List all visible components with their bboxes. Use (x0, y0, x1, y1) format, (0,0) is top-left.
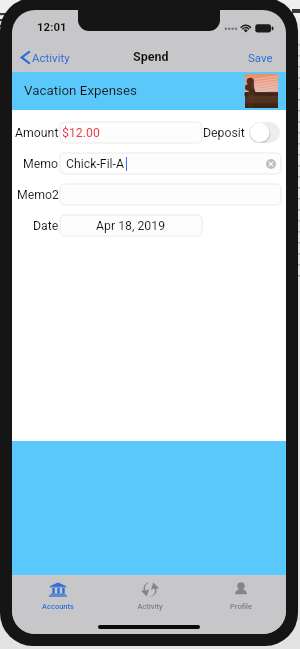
staticText: Memo2 (17, 188, 59, 202)
staticText: Activity (32, 51, 70, 64)
staticText: Activity (137, 602, 163, 611)
staticText: Profile (230, 602, 252, 611)
staticText: Apr 18, 2019 (96, 219, 166, 233)
staticText: Spend (133, 49, 169, 64)
staticText: Accounts (42, 602, 74, 611)
button[interactable]: Activity (104, 575, 195, 620)
button[interactable]: Save (248, 44, 273, 70)
staticText: Vacation Expenses (24, 83, 137, 99)
button[interactable]: Profile (195, 575, 286, 620)
button[interactable]: Deposit toggle (249, 122, 280, 143)
button[interactable]: Chick-Fil-A (60, 153, 281, 174)
button[interactable]: Accounts (12, 575, 104, 620)
button[interactable]: Clear text (266, 159, 276, 169)
staticText: Chick-Fil-A (66, 157, 125, 171)
staticText: 12:01 (37, 20, 67, 33)
button[interactable]: Deposit (203, 122, 280, 143)
staticText: Amount (15, 126, 59, 140)
button[interactable] (60, 184, 281, 205)
staticText: Save (248, 51, 273, 64)
staticText: Deposit (203, 126, 245, 140)
button[interactable]: Expense photo (245, 74, 278, 108)
staticText: Memo (23, 157, 59, 171)
staticText: $12.00 (62, 126, 100, 140)
button[interactable]: Apr 18, 2019 (60, 215, 202, 236)
button[interactable]: $12.00 (60, 122, 202, 143)
staticText: Date (33, 219, 59, 233)
button[interactable]: Activity (20, 44, 70, 70)
